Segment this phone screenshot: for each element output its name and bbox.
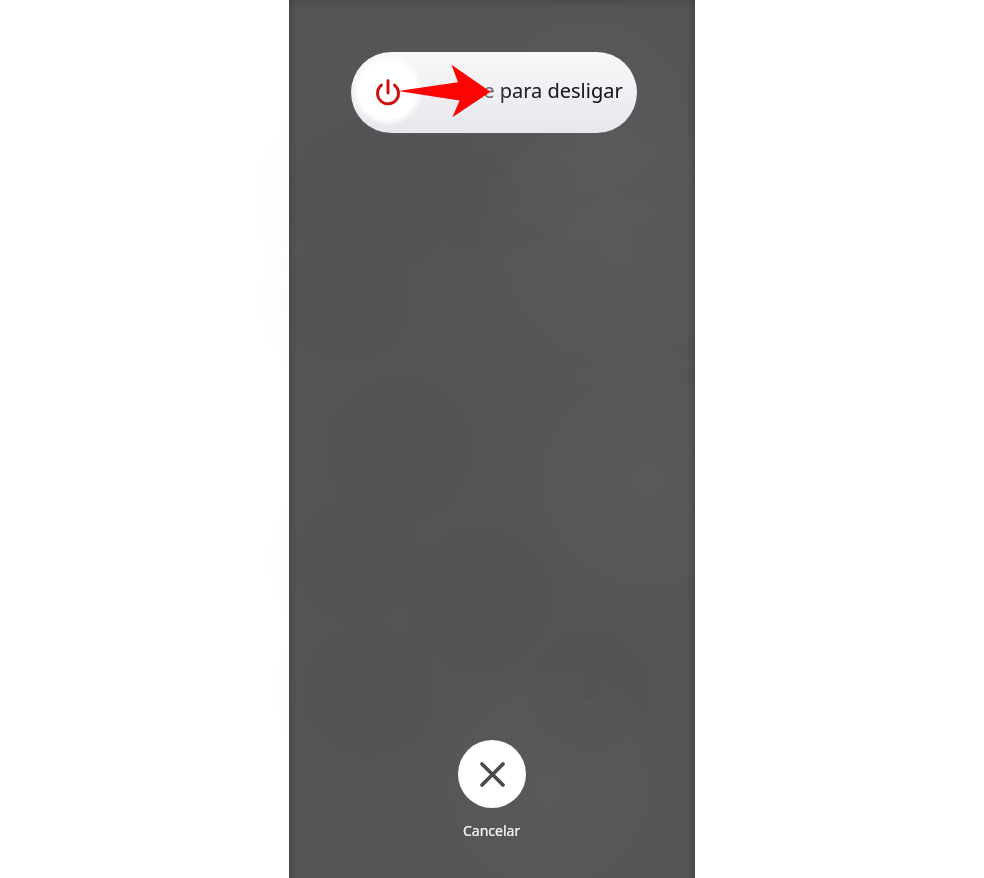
button[interactable]: Cancel bbox=[458, 740, 526, 840]
staticText: Deslize para desligar bbox=[428, 77, 623, 104]
button[interactable]: Deslize para desligar bbox=[351, 52, 637, 133]
staticText: Cancelar bbox=[463, 821, 521, 840]
other: Cancel bbox=[458, 740, 526, 808]
